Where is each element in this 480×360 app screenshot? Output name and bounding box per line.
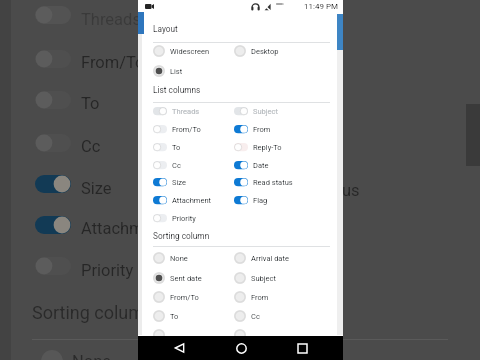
button[interactable]: To <box>147 307 237 325</box>
button[interactable]: Cc <box>147 157 239 174</box>
staticText: Threads <box>81 10 141 29</box>
button[interactable]: Recent apps <box>282 336 322 360</box>
staticText: Attachment <box>172 196 212 205</box>
button[interactable]: Reply-To <box>228 139 320 156</box>
staticText: Threads <box>172 107 200 116</box>
staticText: Reply-To <box>253 143 282 152</box>
button[interactable]: Home <box>221 336 261 360</box>
staticText: From/To <box>170 293 199 302</box>
staticText: Date <box>253 161 269 170</box>
staticText: Arrival date <box>251 254 289 263</box>
staticText: Subject <box>251 274 276 283</box>
staticText: None <box>170 254 188 263</box>
button[interactable] <box>147 326 237 344</box>
staticText: Cc <box>251 312 260 321</box>
staticText: Layout <box>153 24 178 34</box>
button[interactable]: Cc <box>228 307 318 325</box>
button[interactable]: From/To <box>147 121 239 138</box>
button[interactable]: Subject <box>228 103 320 120</box>
staticText: Sent date <box>170 274 202 283</box>
button[interactable]: None <box>147 249 237 267</box>
button[interactable]: Widescreen <box>147 42 237 60</box>
staticText: To <box>81 94 100 113</box>
staticText: Flag <box>253 196 268 205</box>
staticText: Priority <box>81 261 134 280</box>
button[interactable]: Read status <box>228 174 320 191</box>
button[interactable]: From/To <box>147 288 237 306</box>
staticText: 11:49 PM <box>304 2 338 11</box>
staticText: Read status <box>253 178 293 187</box>
staticText: Cc <box>81 137 101 156</box>
button[interactable]: Date <box>228 157 320 174</box>
staticText: Desktop <box>251 47 279 56</box>
button[interactable]: To <box>147 139 239 156</box>
staticText: Priority <box>172 214 196 223</box>
button[interactable]: Desktop <box>228 42 318 60</box>
button[interactable]: Sent date <box>147 269 237 287</box>
button[interactable]: Flag <box>228 192 320 209</box>
staticText: List <box>170 67 183 76</box>
staticText: From/To <box>172 125 201 134</box>
staticText: To <box>170 312 179 321</box>
staticText: Size <box>81 179 112 198</box>
staticText: To <box>172 143 181 152</box>
staticText: Subject <box>253 107 278 116</box>
button[interactable]: Subject <box>228 269 318 287</box>
staticText: From <box>253 125 271 134</box>
staticText: From/To <box>81 53 145 72</box>
staticText: List columns <box>153 85 201 95</box>
staticText: None <box>72 352 112 360</box>
staticText: Attachment <box>81 219 167 238</box>
button[interactable]: List <box>147 62 237 80</box>
button[interactable]: Threads <box>147 103 239 120</box>
staticText: From <box>251 293 269 302</box>
staticText: Sorting column <box>153 231 210 241</box>
button[interactable]: Attachment <box>147 192 239 209</box>
staticText: Cc <box>172 161 181 170</box>
button[interactable] <box>228 326 318 344</box>
button[interactable]: Back <box>159 336 199 360</box>
button[interactable]: Size <box>147 174 239 191</box>
button[interactable]: Priority <box>147 210 239 227</box>
staticText: Size <box>172 178 186 187</box>
button[interactable]: From <box>228 288 318 306</box>
button[interactable]: Arrival date <box>228 249 318 267</box>
staticText: us <box>342 181 360 200</box>
staticText: Sorting column <box>32 302 154 323</box>
button[interactable]: From <box>228 121 320 138</box>
staticText: Widescreen <box>170 47 210 56</box>
